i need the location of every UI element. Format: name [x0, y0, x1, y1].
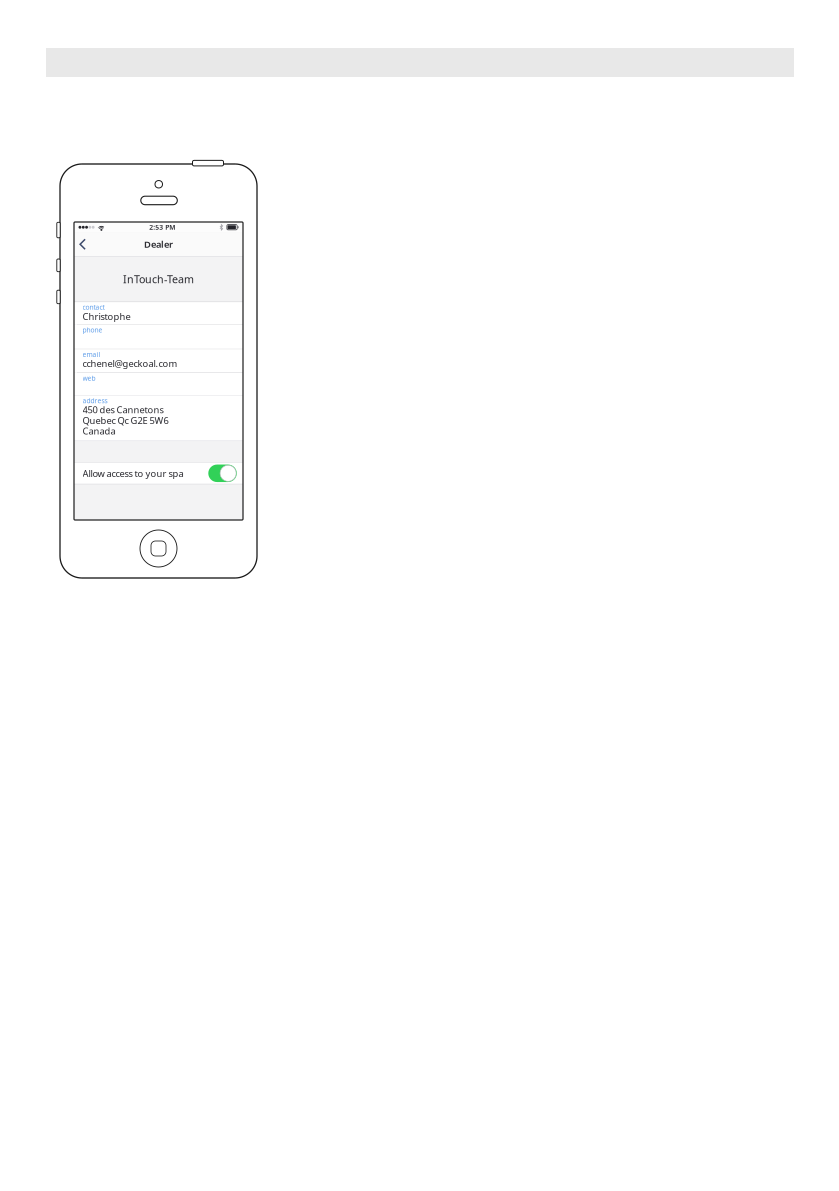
- staticText: Canada: [82, 425, 115, 437]
- button[interactable]: address: [74, 396, 243, 441]
- staticText: 450 des Cannetons: [82, 403, 163, 416]
- staticText: Allow access to your spa: [82, 467, 183, 479]
- staticText: Christophe: [82, 310, 130, 322]
- button[interactable]: phone: [74, 325, 243, 349]
- staticText: Dealer: [144, 238, 173, 250]
- staticText: web: [82, 374, 95, 382]
- button[interactable]: email: [74, 349, 243, 372]
- staticText: address: [82, 396, 107, 405]
- staticText: email: [82, 350, 100, 359]
- staticText: 2:53 PM: [149, 223, 175, 232]
- staticText: phone: [82, 325, 102, 334]
- button[interactable]: web: [74, 373, 243, 395]
- button[interactable]: Allow access to your spa: [74, 463, 243, 484]
- staticText: InTouch-Team: [123, 272, 194, 286]
- staticText: Quebec Qc G2E 5W6: [82, 414, 168, 426]
- staticText: contact: [82, 303, 104, 312]
- button[interactable]: contact: [74, 302, 243, 324]
- staticText: cchenel@geckoal.com: [82, 357, 177, 370]
- button[interactable]: Back: [74, 232, 96, 256]
